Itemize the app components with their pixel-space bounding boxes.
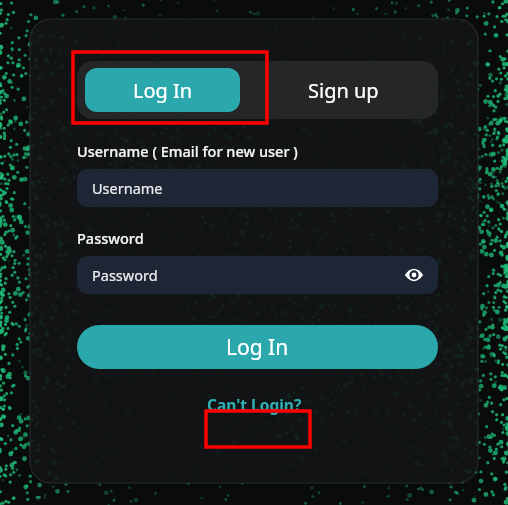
- button[interactable]: Password: [77, 256, 438, 294]
- button[interactable]: Show password: [401, 262, 427, 288]
- button[interactable]: Log In: [85, 68, 240, 112]
- staticText: Log In: [133, 77, 193, 104]
- button[interactable]: Log In: [77, 325, 438, 369]
- staticText: Username: [92, 178, 163, 198]
- staticText: Log In: [226, 333, 289, 362]
- staticText: Password: [77, 228, 144, 248]
- button[interactable]: Can't Login?: [199, 390, 310, 419]
- staticText: Sign up: [308, 77, 379, 104]
- staticText: Can't Login?: [207, 394, 302, 415]
- staticText: Password: [92, 265, 158, 285]
- button[interactable]: Sign up: [248, 61, 438, 119]
- button[interactable]: Username: [77, 169, 438, 207]
- staticText: Username ( Email for new user ): [77, 141, 298, 161]
